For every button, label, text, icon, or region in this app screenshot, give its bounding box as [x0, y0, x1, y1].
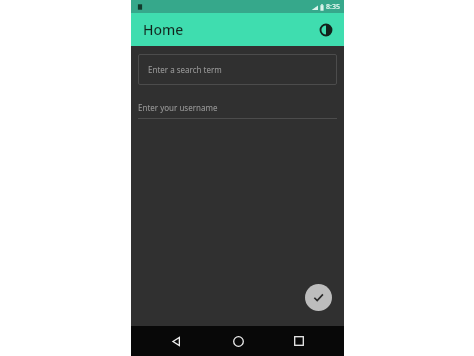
- button[interactable]: Enter a search term: [138, 54, 337, 85]
- staticText: Home: [143, 20, 184, 39]
- button[interactable]: Back: [159, 326, 193, 356]
- button[interactable]: Confirm: [305, 284, 332, 311]
- button[interactable]: Toggle dark theme: [314, 18, 338, 42]
- button[interactable]: Recent apps: [282, 326, 316, 356]
- staticText: Enter a search term: [148, 64, 222, 75]
- button[interactable]: Enter your username: [131, 97, 344, 119]
- button[interactable]: Home: [221, 326, 255, 356]
- staticText: 8:35: [326, 2, 340, 12]
- staticText: Enter your username: [138, 102, 218, 113]
